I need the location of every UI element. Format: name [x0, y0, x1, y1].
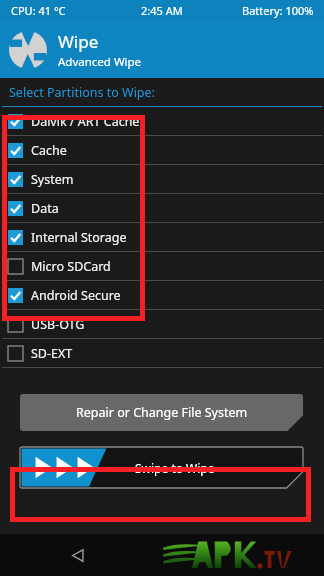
- staticText: Wipe: [58, 30, 99, 53]
- staticText: Internal Storage: [31, 229, 127, 246]
- staticText: Battery: 100%: [242, 3, 314, 18]
- button[interactable]: Micro SDCard: [0, 252, 324, 281]
- button[interactable]: USB-OTG: [0, 310, 324, 339]
- staticText: SD-EXT: [31, 345, 73, 362]
- staticText: Advanced Wipe: [58, 54, 142, 70]
- button[interactable]: Dalvik / ART Cache: [0, 107, 324, 136]
- button[interactable]: System: [0, 165, 324, 194]
- staticText: Micro SDCard: [31, 258, 111, 275]
- staticText: Data: [31, 200, 59, 217]
- button[interactable]: Internal Storage: [0, 223, 324, 252]
- staticText: Select Partitions to Wipe:: [9, 84, 155, 101]
- staticText: USB-OTG: [31, 316, 85, 333]
- staticText: System: [31, 171, 74, 188]
- staticText: CPU: 41 °C: [11, 3, 66, 18]
- button[interactable]: Cache: [0, 136, 324, 165]
- button[interactable]: Repair or Change File System: [20, 394, 303, 431]
- button[interactable]: SD-EXT: [0, 339, 324, 368]
- staticText: 2:45 AM: [141, 3, 183, 18]
- staticText: Dalvik / ART Cache: [31, 113, 140, 130]
- staticText: Repair or Change File System: [76, 404, 248, 421]
- staticText: Swipe to Wipe: [135, 460, 215, 476]
- button[interactable]: Back: [62, 540, 92, 570]
- button[interactable]: Data: [0, 194, 324, 223]
- button[interactable]: Android Secure: [0, 281, 324, 310]
- staticText: Cache: [31, 142, 67, 159]
- button[interactable]: Wipe: [0, 21, 324, 78]
- staticText: Android Secure: [31, 287, 121, 304]
- button[interactable]: Swipe to Wipe: [20, 447, 303, 488]
